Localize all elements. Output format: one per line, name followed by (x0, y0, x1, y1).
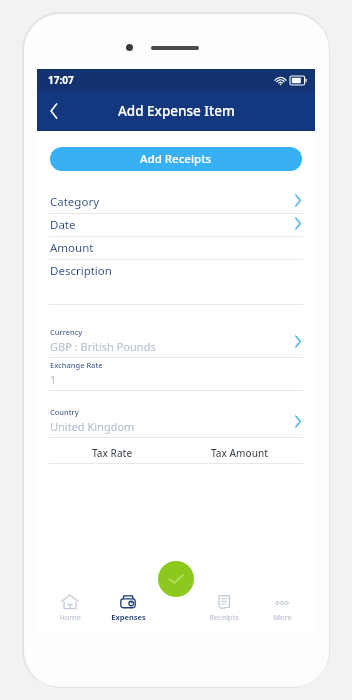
staticText: Tax Amount (211, 446, 269, 460)
staticText: Currency (50, 327, 83, 337)
button[interactable]: Home (44, 594, 96, 622)
button[interactable]: Amount (37, 237, 315, 259)
staticText: More (273, 612, 292, 622)
staticText: Receipts (209, 612, 239, 622)
staticText: Amount (50, 240, 94, 256)
staticText: Add Expense Item (118, 102, 235, 120)
staticText: 17:07 (48, 73, 74, 87)
staticText: Date (50, 217, 76, 233)
staticText: Country (50, 407, 79, 417)
button[interactable]: Save expense (158, 561, 194, 597)
button[interactable]: Exchange Rate (37, 358, 315, 390)
staticText: Tax Rate (92, 446, 133, 460)
staticText: Expenses (111, 612, 146, 622)
button[interactable]: Expenses (102, 594, 154, 622)
button[interactable]: Receipts (198, 594, 250, 622)
button[interactable]: Back (37, 94, 71, 128)
staticText: United Kingdom (50, 419, 135, 434)
button[interactable]: Date (37, 214, 315, 236)
staticText: Exchange Rate (50, 360, 103, 370)
button[interactable]: Currency (37, 325, 315, 357)
button[interactable]: Country (37, 405, 315, 437)
staticText: Category (50, 194, 100, 210)
staticText: GBP : British Pounds (50, 339, 156, 354)
staticText: Add Receipts (140, 151, 212, 167)
button[interactable]: Description (37, 260, 315, 304)
button[interactable]: Tax Amount (176, 442, 303, 464)
staticText: 1 (50, 372, 57, 387)
staticText: Description (50, 263, 112, 279)
button[interactable]: Add Receipts (50, 147, 302, 171)
button[interactable]: Tax Rate (49, 442, 176, 464)
staticText: Home (59, 612, 81, 622)
button[interactable]: More (256, 594, 308, 622)
button[interactable]: Category (37, 191, 315, 213)
